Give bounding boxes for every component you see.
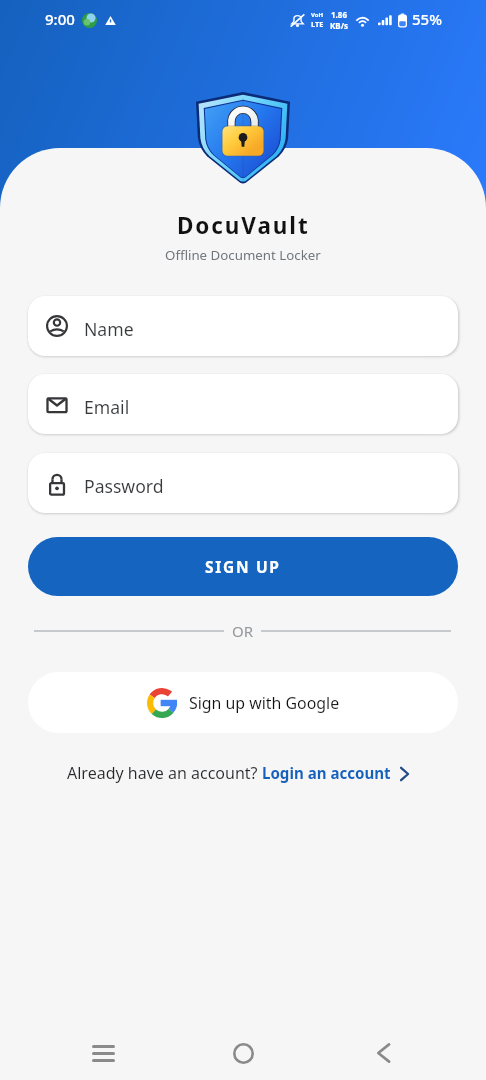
button[interactable]: Home [207, 1026, 279, 1080]
button[interactable]: Login an account [262, 763, 420, 784]
button[interactable]: Name [28, 296, 458, 356]
staticText: DocuVault [177, 210, 310, 241]
staticText: VoH [311, 11, 324, 19]
staticText: 9:00 [45, 9, 75, 29]
staticText: Sign up with Google [189, 692, 340, 714]
staticText: Password [84, 474, 164, 498]
staticText: Login an account [262, 763, 391, 784]
staticText: Already have an account? [67, 762, 262, 784]
button[interactable]: Back [347, 1026, 419, 1080]
staticText: Name [84, 317, 134, 341]
button[interactable]: Recent apps [67, 1026, 139, 1080]
staticText: KB/s [330, 20, 348, 31]
button[interactable]: Sign up with Google [28, 672, 458, 733]
staticText: LTE [311, 19, 324, 29]
staticText: 55% [412, 9, 442, 29]
button[interactable]: Password [28, 453, 458, 513]
staticText: Offline Document Locker [165, 246, 321, 264]
button[interactable]: Email [28, 374, 458, 434]
staticText: 1.86 [331, 9, 347, 20]
staticText: OR [232, 621, 254, 641]
staticText: SIGN UP [205, 556, 281, 577]
button[interactable]: SIGN UP [28, 537, 458, 596]
staticText: Email [84, 395, 130, 419]
